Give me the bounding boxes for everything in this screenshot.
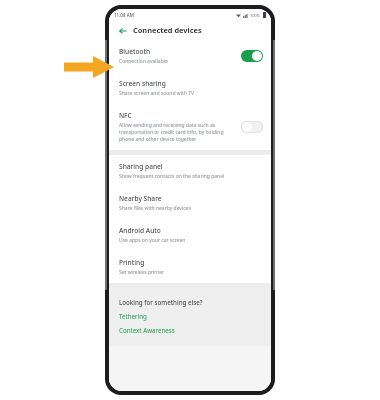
button[interactable]: Bluetooth xyxy=(109,40,271,72)
staticText: 11:08 AM xyxy=(114,12,134,18)
staticText: Connected devices xyxy=(133,25,202,35)
staticText: NFC xyxy=(119,111,132,120)
button[interactable]: NFC off xyxy=(241,121,263,133)
staticText: Allow sending and receiving data such as… xyxy=(119,122,224,143)
staticText: Android Auto xyxy=(119,226,161,235)
button[interactable]: Sharing panel xyxy=(109,155,271,187)
button[interactable]: Bluetooth on xyxy=(241,50,263,62)
staticText: Show frequent contacts on the sharing pa… xyxy=(119,173,225,180)
staticText: Use apps on your car screen xyxy=(119,237,186,244)
button[interactable]: Back xyxy=(116,24,129,37)
staticText: Share files with nearby devices xyxy=(119,205,191,212)
staticText: Screen sharing xyxy=(119,79,166,88)
staticText: Share screen and sound with TV xyxy=(119,90,194,97)
staticText: Sharing panel xyxy=(119,162,163,171)
button[interactable]: Tethering xyxy=(119,312,147,320)
staticText: Context Awareness xyxy=(119,326,175,334)
staticText: Set wireless printer xyxy=(119,269,165,276)
button[interactable]: Context Awareness xyxy=(119,326,175,334)
button[interactable]: Printing xyxy=(109,251,271,283)
staticText: 100% xyxy=(250,13,261,18)
staticText: Printing xyxy=(119,258,145,267)
staticText: Nearby Share xyxy=(119,194,162,203)
staticText: Connection available xyxy=(119,58,168,65)
button[interactable]: Android Auto xyxy=(109,219,271,251)
staticText: Bluetooth xyxy=(119,47,151,56)
button[interactable]: NFC xyxy=(109,104,271,150)
button[interactable]: Nearby Share xyxy=(109,187,271,219)
button[interactable]: Screen sharing xyxy=(109,72,271,104)
staticText: Looking for something else? xyxy=(119,298,203,306)
staticText: Tethering xyxy=(119,312,147,320)
